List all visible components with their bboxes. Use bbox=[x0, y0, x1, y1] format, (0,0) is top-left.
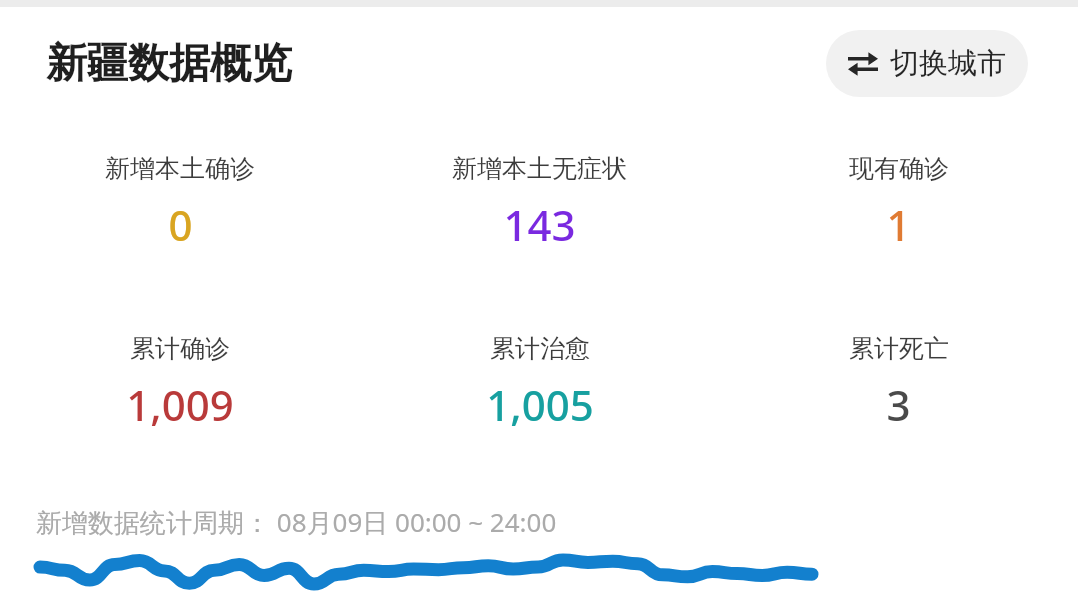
staticText: 1,005 bbox=[486, 376, 594, 433]
staticText: 新增数据统计周期： 08月09日 00:00 ~ 24:00 bbox=[36, 504, 557, 540]
staticText: 新疆数据概览 bbox=[46, 38, 292, 90]
staticText: 3 bbox=[886, 376, 911, 433]
button[interactable]: 新增本土无症状 bbox=[360, 153, 719, 253]
staticText: 新增本土确诊 bbox=[105, 153, 255, 184]
staticText: 1,009 bbox=[126, 376, 234, 433]
staticText: 新增本土无症状 bbox=[452, 153, 627, 184]
staticText: 现有确诊 bbox=[849, 153, 949, 184]
button[interactable]: 累计死亡 bbox=[719, 333, 1078, 433]
staticText: 1 bbox=[886, 196, 911, 253]
button[interactable]: 新增本土确诊 bbox=[0, 153, 360, 253]
other: 切换城市 bbox=[848, 52, 878, 76]
staticText: 切换城市 bbox=[890, 45, 1006, 82]
staticText: 累计死亡 bbox=[849, 333, 949, 364]
button[interactable]: 现有确诊 bbox=[719, 153, 1078, 253]
staticText: 0 bbox=[168, 196, 193, 253]
staticText: 累计治愈 bbox=[490, 333, 590, 364]
button[interactable]: 累计确诊 bbox=[0, 333, 360, 433]
button[interactable]: 累计治愈 bbox=[360, 333, 719, 433]
button[interactable]: 切换城市 bbox=[826, 30, 1028, 97]
staticText: 累计确诊 bbox=[130, 333, 230, 364]
staticText: 143 bbox=[503, 196, 576, 253]
